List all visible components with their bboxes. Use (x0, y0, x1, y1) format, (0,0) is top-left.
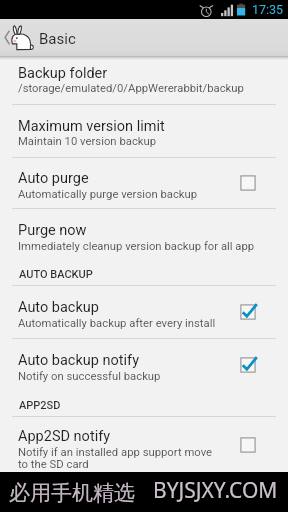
staticText: Auto backup notify (18, 352, 139, 369)
button[interactable]: Backup folder (0, 56, 288, 104)
staticText: Maximum version limit (18, 118, 165, 135)
button[interactable]: Checked (230, 347, 266, 383)
staticText: App2SD notify (18, 428, 111, 445)
button[interactable]: Navigate up (0, 19, 92, 56)
staticText: 17:35 (252, 2, 284, 17)
staticText: Basic (39, 30, 76, 48)
staticText: Automatically purge version backup (18, 188, 198, 201)
button[interactable]: App2SD notify (0, 417, 288, 472)
staticText: BYJSJXY.COM (153, 476, 278, 505)
button[interactable]: Checked (230, 294, 266, 330)
staticText: APP2SD (19, 399, 61, 412)
staticText: Auto backup (18, 299, 99, 316)
staticText: Notify on successful backup (18, 370, 161, 383)
staticText: Immediately cleanup version backup for a… (18, 240, 255, 253)
button[interactable]: Unchecked (230, 165, 266, 201)
button[interactable]: Unchecked (230, 427, 266, 463)
button[interactable]: Purge now (0, 209, 288, 261)
staticText: Maintain 10 version backup (18, 135, 157, 148)
button[interactable]: Maximum version limit (0, 105, 288, 157)
button[interactable]: Auto backup (0, 286, 288, 338)
staticText: Backup folder (18, 65, 108, 82)
button[interactable]: Auto backup notify (0, 339, 288, 390)
staticText: 必用手机精选 (9, 480, 135, 506)
button[interactable]: Auto purge (0, 158, 288, 208)
staticText: Purge now (18, 222, 87, 239)
staticText: AUTO BACKUP (19, 268, 93, 281)
staticText: /storage/emulated/0/AppWererabbit/backup (18, 82, 244, 95)
staticText: Automatically backup after every install (18, 317, 216, 330)
staticText: Auto purge (18, 170, 89, 187)
staticText: Notify if an installed app support move … (18, 446, 213, 471)
